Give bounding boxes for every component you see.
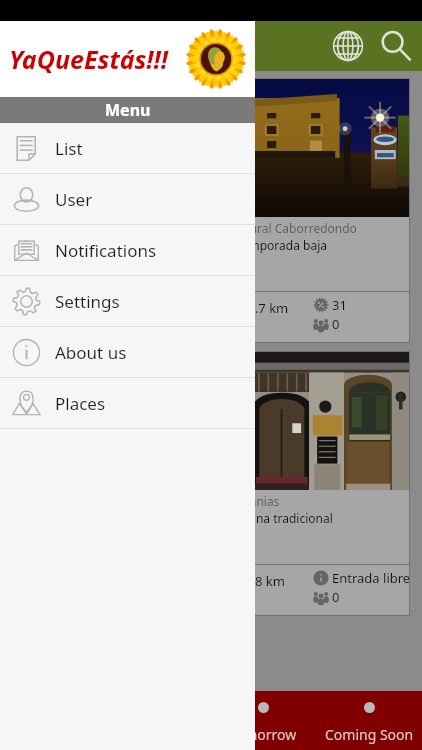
button[interactable]: Bar El Puerto (12, 351, 184, 616)
staticText: Posada Rural Caborredondo (198, 220, 357, 236)
button[interactable]: Language (324, 22, 372, 70)
staticText: User (55, 188, 93, 211)
staticText: 3.2 km (54, 299, 95, 317)
staticText: Tomorrow (229, 725, 297, 744)
button[interactable]: Search (372, 22, 420, 70)
button[interactable]: Tomorrow (210, 691, 316, 750)
button[interactable]: User (0, 174, 255, 225)
staticText: Casa Cananias (198, 493, 280, 509)
button[interactable]: Notifications (0, 225, 255, 276)
staticText: 9.8 km (244, 572, 285, 590)
staticText: 31 (332, 296, 347, 314)
staticText: Sabor cocina tradicional (198, 510, 333, 526)
button[interactable]: Settings (0, 276, 255, 327)
staticText: Oferta temporada baja (198, 237, 327, 253)
staticText: 0 (332, 315, 340, 333)
staticText: Places (55, 392, 106, 415)
button[interactable]: Places (0, 378, 255, 429)
staticText: Surf y naturaleza (20, 237, 115, 253)
staticText: Settings (55, 290, 120, 313)
staticText: 0 (332, 588, 340, 606)
staticText: Playa de Merón (20, 220, 108, 236)
staticText: 10.7 km (240, 299, 289, 317)
staticText: Entrada libre (332, 569, 410, 587)
staticText: Notifications (55, 239, 157, 262)
button[interactable]: List (0, 123, 255, 174)
staticText: 0 (130, 315, 138, 333)
button[interactable]: Posada Rural Caborredondo (190, 78, 410, 343)
staticText: Coming Soon (325, 725, 414, 744)
staticText: List (55, 137, 83, 160)
button[interactable]: Playa de Merón (12, 78, 184, 343)
button[interactable]: About us (0, 327, 255, 378)
button[interactable]: Casa Cananias (190, 351, 410, 616)
staticText: About us (55, 341, 127, 364)
staticText: YaQueEstás!!! (9, 42, 168, 76)
staticText: Menu (105, 99, 151, 121)
button[interactable]: Coming Soon (316, 691, 422, 750)
